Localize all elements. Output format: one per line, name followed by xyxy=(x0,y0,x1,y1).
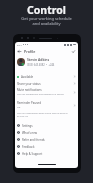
button[interactable]: Feedback xyxy=(15,143,78,150)
button[interactable]: Stevin Adkins xyxy=(15,57,78,67)
staticText: (303) 645 4082 • +244 xyxy=(27,63,55,67)
staticText: Turn on notifications when you're back a… xyxy=(17,112,68,118)
staticText: Off xyxy=(17,106,21,109)
staticText: 9:41 xyxy=(17,43,22,46)
staticText: Refer and friends xyxy=(22,138,45,142)
button[interactable]: Available xyxy=(15,73,78,80)
button[interactable]: Reminder Paused xyxy=(15,100,78,110)
staticText: Stevin Adkins xyxy=(27,57,50,62)
button[interactable]: Done xyxy=(71,49,76,54)
button[interactable]: Back xyxy=(17,49,22,54)
staticText: Available xyxy=(21,75,34,79)
button[interactable]: Help & Support xyxy=(15,150,78,157)
staticText: Mute notifications xyxy=(17,88,42,92)
staticText: Share your status xyxy=(17,82,41,86)
staticText: Get your working schedule and availabili… xyxy=(21,16,72,26)
staticText: Profile xyxy=(24,49,36,54)
button[interactable]: Mute notifications xyxy=(15,87,78,97)
staticText: Settings xyxy=(22,124,33,128)
staticText: Feedback xyxy=(22,145,35,149)
button[interactable]: What's new xyxy=(15,129,78,136)
staticText: Reminder Paused xyxy=(17,101,41,105)
staticText: Help & Support xyxy=(22,152,43,156)
staticText: Control xyxy=(27,3,66,17)
button[interactable]: Refer and friends xyxy=(15,136,78,143)
button[interactable]: Share your status xyxy=(15,80,78,87)
button[interactable]: Settings xyxy=(15,122,78,129)
staticText: Turn off notifications and badges for a … xyxy=(17,93,64,96)
staticText: What's new xyxy=(22,131,38,135)
